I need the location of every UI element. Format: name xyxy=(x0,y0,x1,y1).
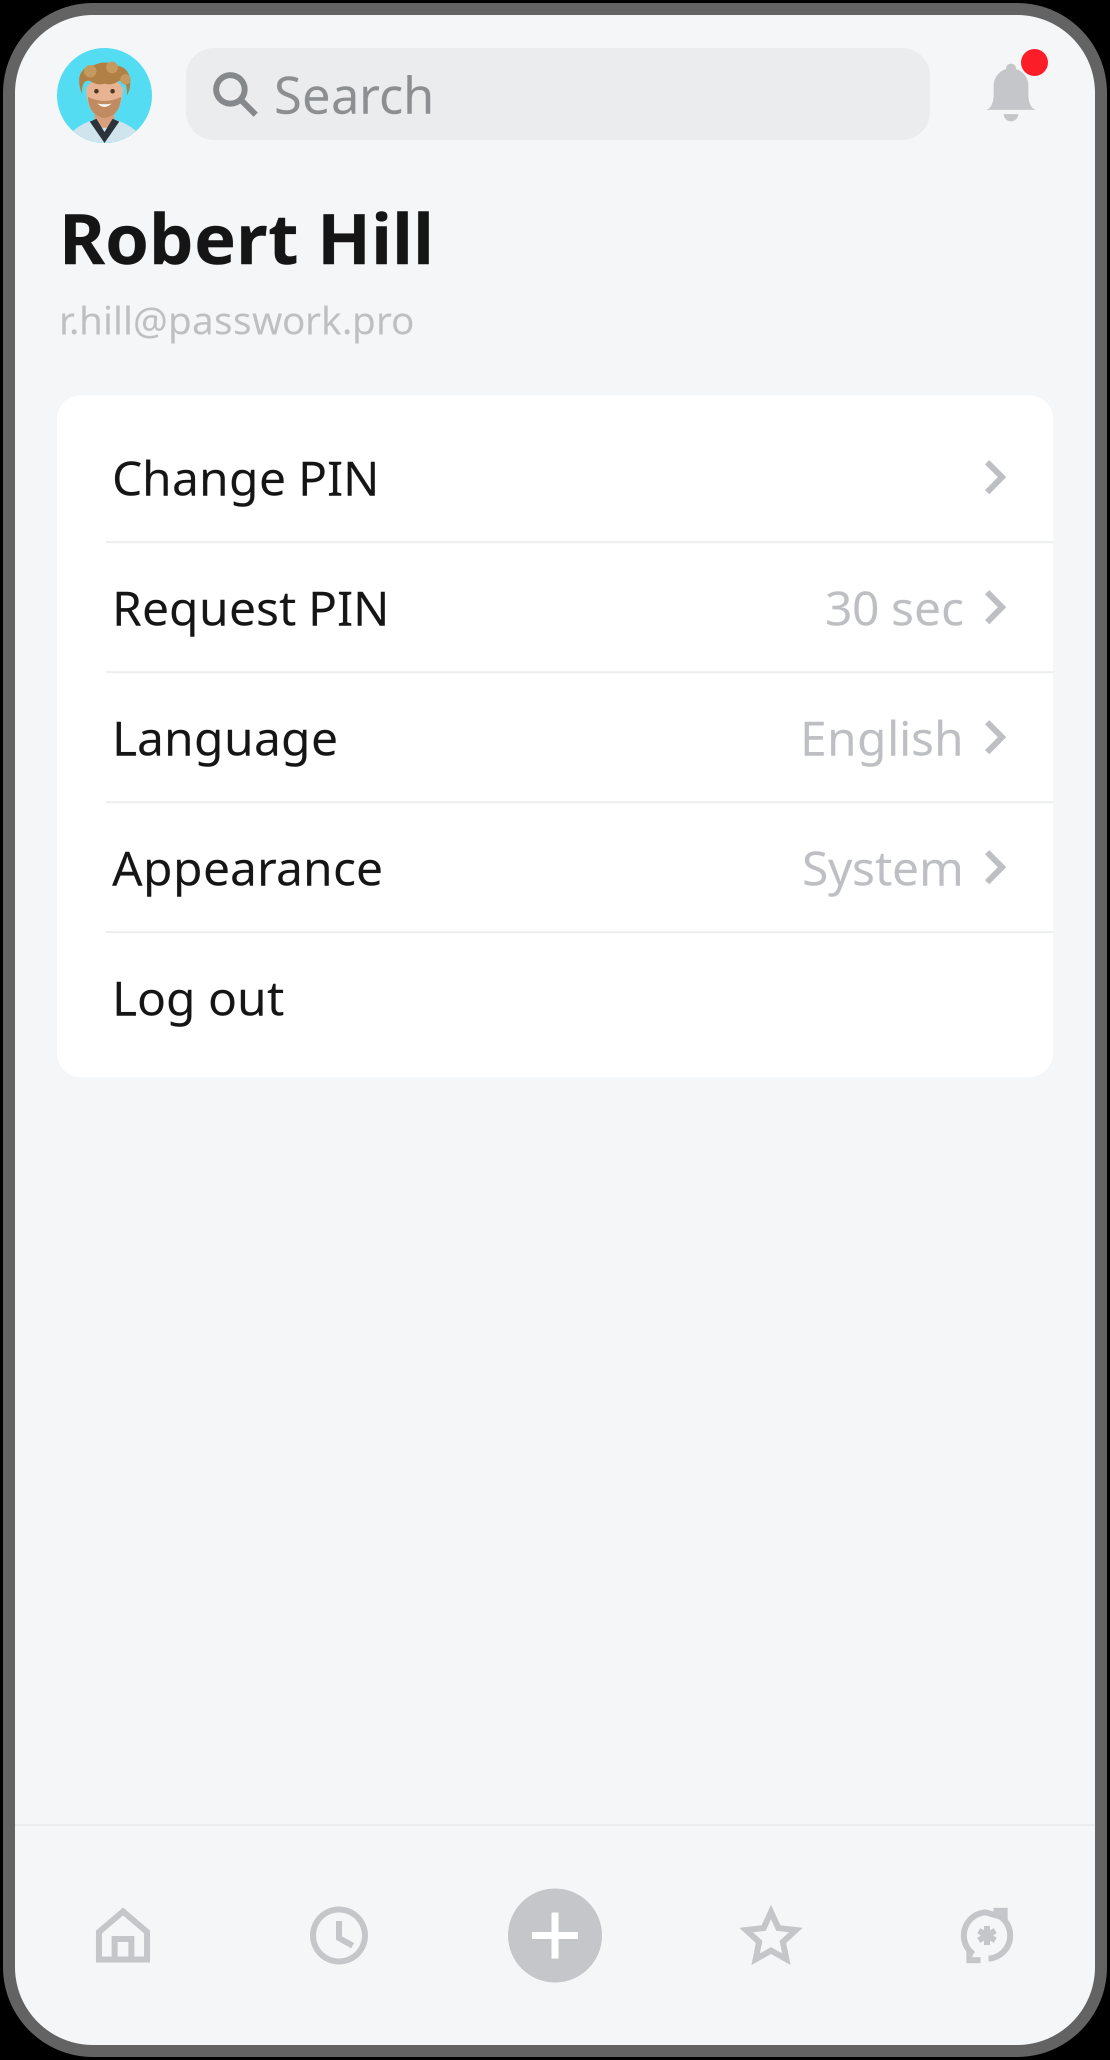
staticText: Log out xyxy=(112,965,284,1029)
staticText: System xyxy=(802,835,964,899)
staticText: Robert Hill xyxy=(59,190,434,284)
button[interactable]: Notifications xyxy=(983,48,1048,143)
staticText: 30 sec xyxy=(825,575,964,639)
staticText: Appearance xyxy=(112,835,383,899)
button[interactable]: Language xyxy=(57,673,1053,801)
staticText: Request PIN xyxy=(112,575,389,639)
button[interactable]: Request PIN xyxy=(57,543,1053,671)
staticText: Search xyxy=(274,60,434,128)
button[interactable]: Recent xyxy=(231,1826,447,2045)
button[interactable]: Add xyxy=(447,1826,663,2045)
button[interactable]: Password generator xyxy=(879,1826,1095,2045)
staticText: Change PIN xyxy=(112,445,379,509)
button[interactable]: Home xyxy=(15,1826,231,2045)
staticText: Language xyxy=(112,705,338,769)
staticText: r.hill@passwork.pro xyxy=(59,294,414,345)
button[interactable]: Appearance xyxy=(57,803,1053,931)
staticText: English xyxy=(800,705,964,769)
button[interactable]: Search xyxy=(186,48,930,140)
button[interactable]: Profile xyxy=(57,48,152,143)
button[interactable]: Log out xyxy=(57,933,1053,1061)
button[interactable]: Change PIN xyxy=(57,413,1053,541)
button[interactable]: Favorites xyxy=(663,1826,879,2045)
